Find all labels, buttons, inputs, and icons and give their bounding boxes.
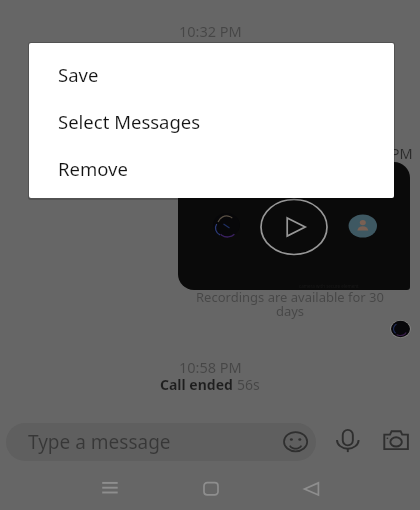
staticText: Save bbox=[58, 62, 99, 87]
button[interactable]: Take photo bbox=[382, 426, 412, 456]
button[interactable]: Save bbox=[29, 51, 394, 98]
button[interactable]: Select Messages bbox=[29, 98, 394, 145]
staticText: Call ended bbox=[160, 375, 237, 394]
staticText: 10:58 PM bbox=[179, 357, 242, 377]
button[interactable]: Type a message bbox=[6, 423, 316, 461]
staticText: 10:32 PM bbox=[179, 21, 242, 41]
button[interactable]: Insert emoji bbox=[282, 427, 310, 457]
staticText: Recordings are available for 30 days bbox=[194, 288, 386, 320]
button[interactable]: Record voice message bbox=[334, 426, 362, 456]
staticText: 56s bbox=[237, 375, 260, 394]
button[interactable]: Home bbox=[191, 476, 231, 510]
button[interactable]: Recent apps bbox=[90, 476, 130, 510]
button[interactable]: Back bbox=[291, 476, 331, 510]
staticText: Select Messages bbox=[58, 109, 201, 134]
staticText: 10:58 PM bbox=[350, 143, 413, 163]
staticText: Remove bbox=[58, 156, 128, 181]
button[interactable]: Remove bbox=[29, 145, 394, 192]
staticText: Type a message bbox=[28, 429, 171, 455]
button[interactable]: Play video message bbox=[178, 162, 410, 290]
